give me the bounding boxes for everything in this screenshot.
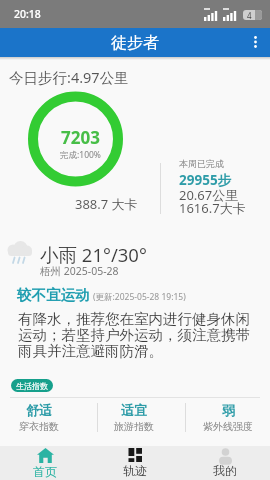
staticText: 轨迹: [123, 463, 147, 478]
staticText: 梧州 2025-05-28: [40, 264, 119, 278]
staticText: 4: [247, 10, 252, 20]
staticText: 紫外线强度: [203, 420, 253, 433]
button[interactable]: 首页: [0, 446, 90, 480]
button[interactable]: [242, 28, 270, 57]
button[interactable]: 7203: [34, 126, 126, 161]
staticText: 生活指数: [16, 381, 48, 391]
staticText: 较不宜运动: [17, 286, 90, 304]
staticText: 旅游指数: [114, 420, 154, 433]
staticText: 1616.7大卡: [179, 199, 246, 217]
button[interactable]: 生活指数: [11, 379, 53, 392]
staticText: 穿衣指数: [19, 420, 59, 433]
button[interactable]: 舒适: [9, 402, 69, 431]
staticText: 7203: [61, 126, 100, 149]
button[interactable]: 轨迹: [90, 446, 180, 480]
staticText: 首页: [33, 464, 57, 479]
staticText: 完成:100%: [60, 149, 101, 161]
button[interactable]: 较不宜运动: [17, 286, 186, 304]
staticText: 本周已完成: [179, 158, 224, 169]
staticText: 弱: [222, 402, 235, 418]
staticText: 我的: [213, 463, 237, 478]
staticText: 有降水，推荐您在室内进行健身休闲 运动；若坚持户外运动，须注意携带 雨具并注意避…: [18, 310, 250, 360]
button[interactable]: 适宜: [104, 402, 164, 431]
button[interactable]: 29955步: [179, 171, 232, 189]
staticText: 今日步行:4.97公里: [9, 67, 129, 87]
staticText: 20.67公里: [179, 186, 239, 204]
staticText: (更新:2025-05-28 19:15): [93, 291, 186, 303]
button[interactable]: 弱: [198, 402, 258, 431]
staticText: 20:18: [14, 7, 41, 21]
staticText: 适宜: [121, 402, 147, 418]
staticText: 小雨 21°/30°: [40, 242, 147, 267]
button[interactable]: 我的: [180, 446, 270, 480]
staticText: 388.7 大卡: [75, 195, 138, 213]
staticText: 舒适: [26, 402, 52, 418]
staticText: 徒步者: [111, 33, 159, 53]
